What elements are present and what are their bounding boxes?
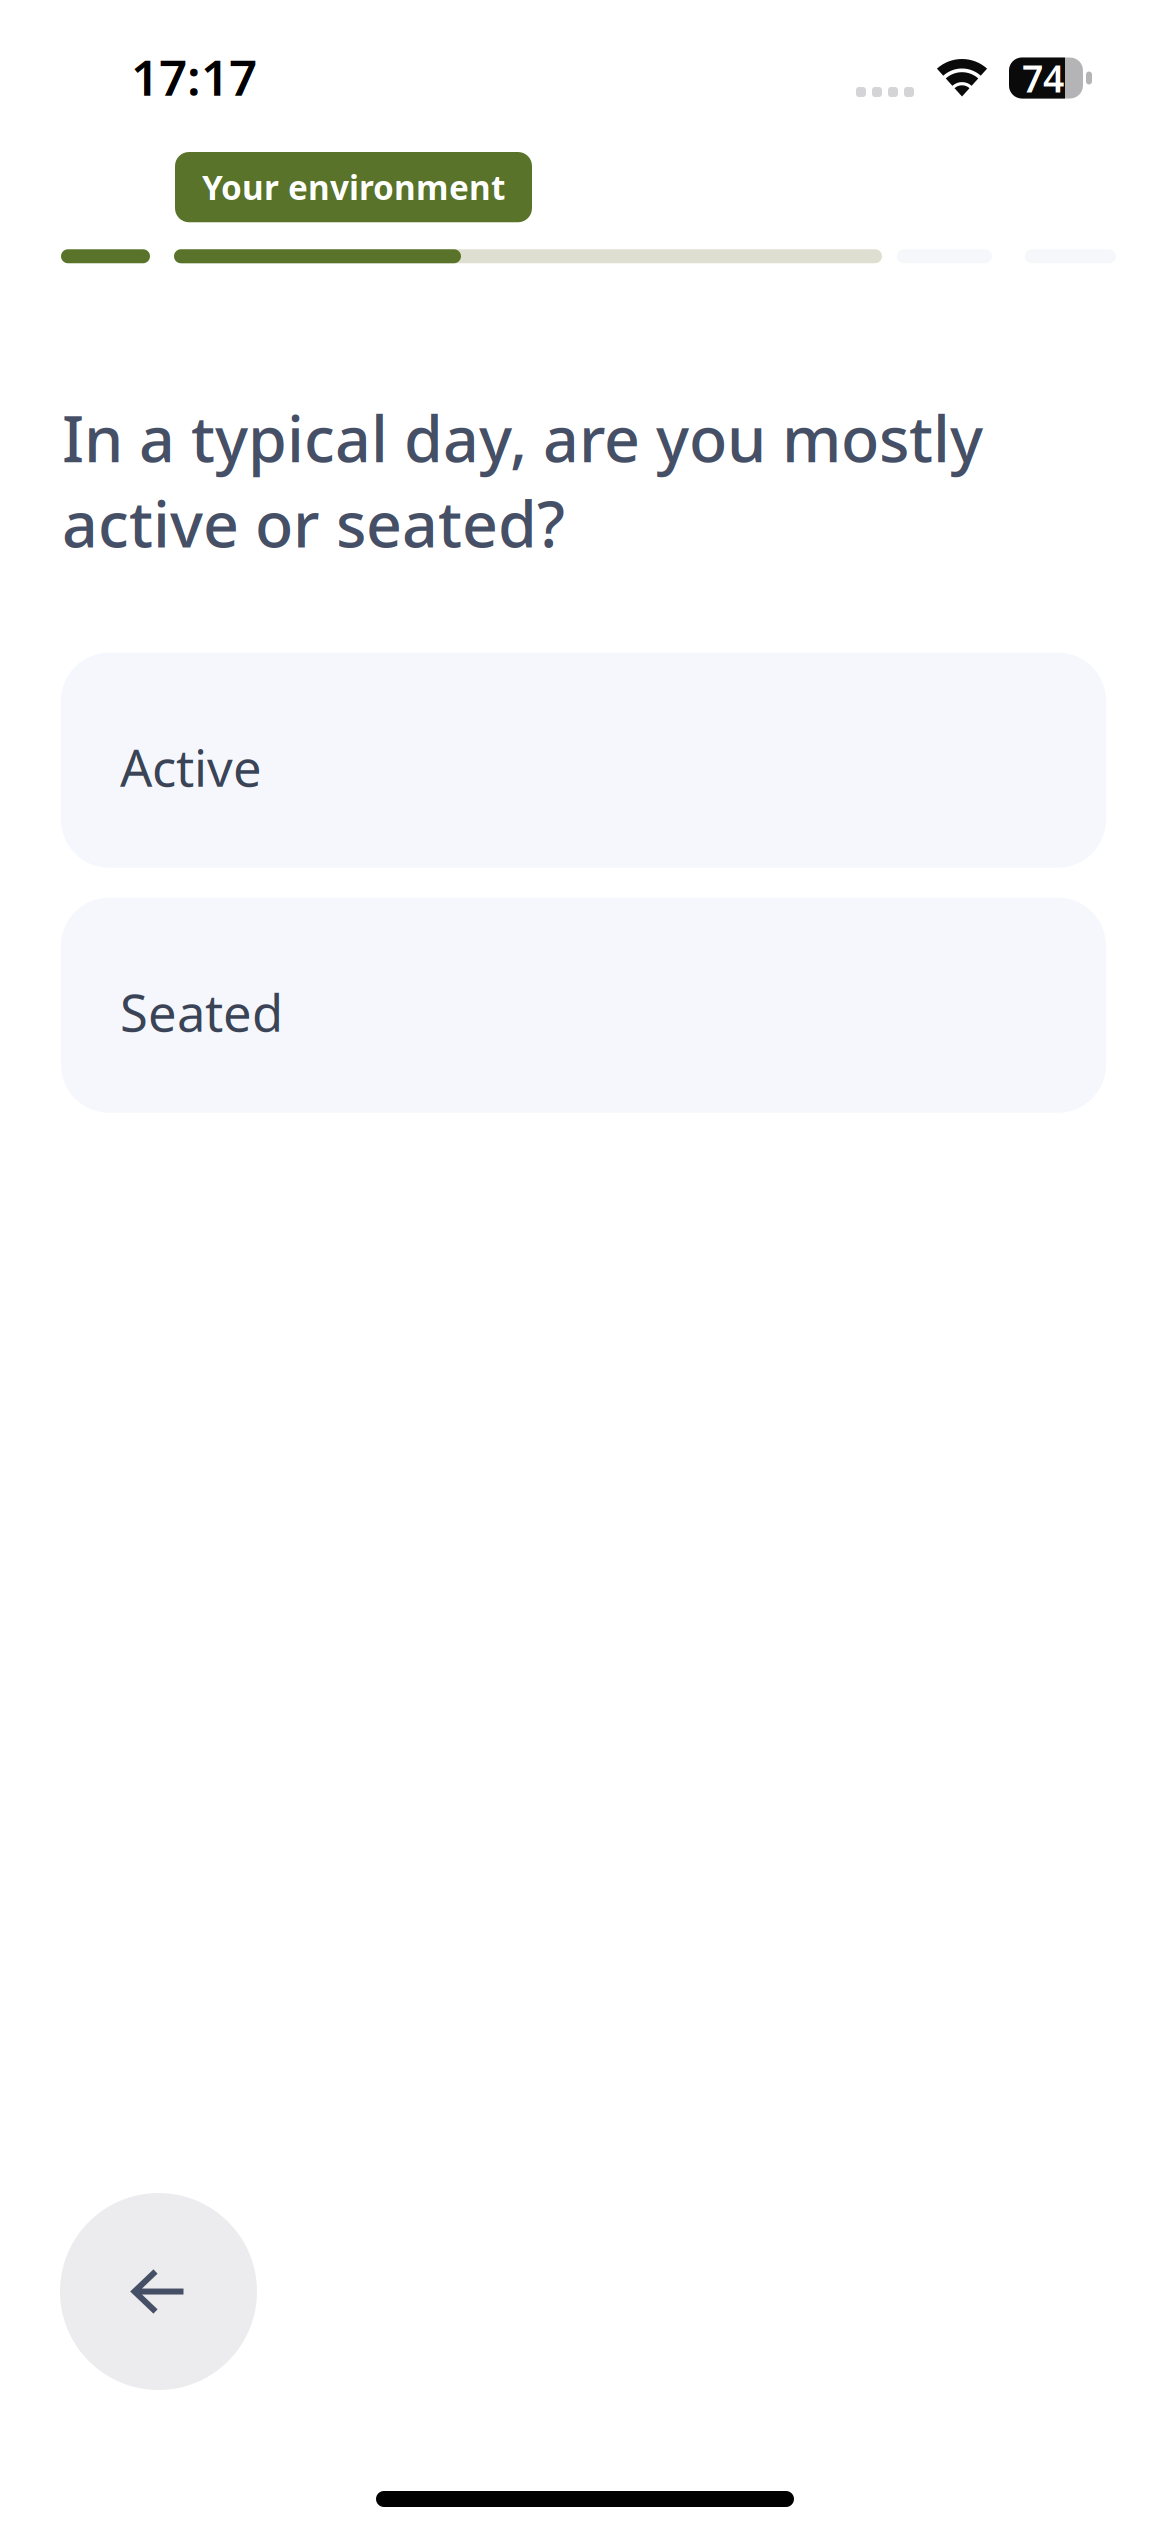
- staticText: Active: [120, 734, 262, 801]
- staticText: Seated: [120, 979, 283, 1046]
- staticText: Your environment: [202, 165, 505, 209]
- button[interactable]: Back: [60, 2193, 257, 2390]
- staticText: 17:17: [131, 44, 257, 109]
- staticText: In a typical day, are you mostly active …: [62, 396, 983, 565]
- staticText: 74: [1022, 53, 1064, 103]
- button[interactable]: Seated: [61, 898, 1106, 1113]
- button[interactable]: Active: [61, 653, 1106, 868]
